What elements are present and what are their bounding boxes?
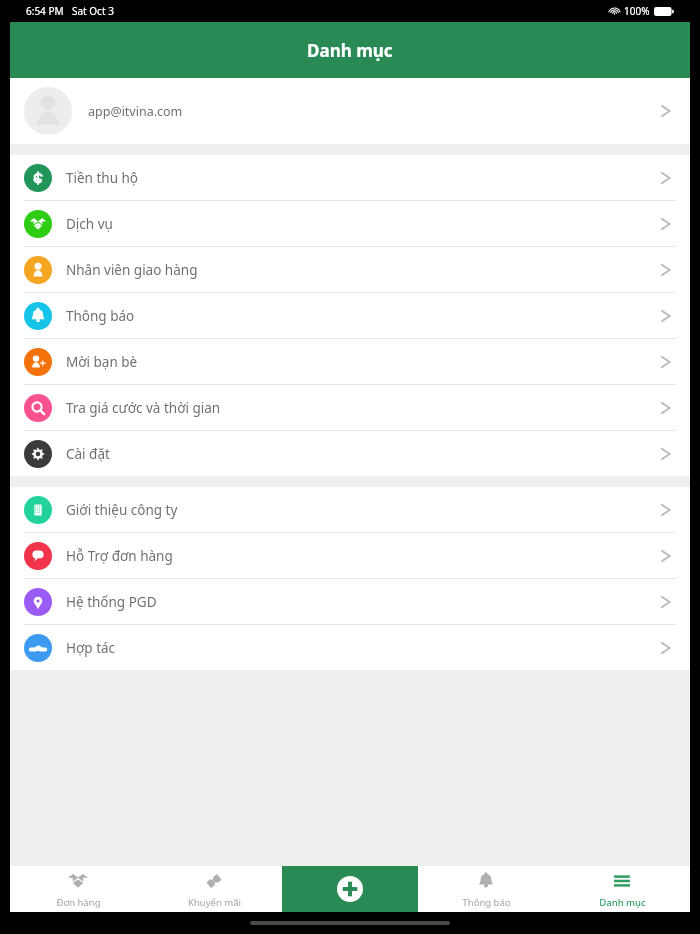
staticText: 100% <box>624 4 650 18</box>
staticText: Thông báo <box>462 896 511 909</box>
staticText: Hệ thống PGD <box>66 593 157 611</box>
button[interactable]: Giới thiệu công ty <box>10 487 690 533</box>
button[interactable]: app@itvina.com <box>10 78 690 144</box>
staticText: 6:54 PM <box>26 4 64 18</box>
staticText: Hỗ Trợ đơn hàng <box>66 547 173 565</box>
staticText: Thông báo <box>66 307 135 325</box>
button[interactable]: Cài đặt <box>10 431 690 476</box>
button[interactable]: Hệ thống PGD <box>10 579 690 625</box>
staticText: Danh mục <box>599 896 646 909</box>
button[interactable]: Đơn hàng <box>10 866 146 912</box>
button[interactable]: Hợp tác <box>10 625 690 670</box>
button[interactable]: Danh mục <box>554 866 690 912</box>
staticText: Đơn hàng <box>56 896 101 909</box>
staticText: Khuyến mãi <box>188 896 241 909</box>
staticText: Nhân viên giao hàng <box>66 261 198 279</box>
button[interactable]: Tạo đơn hàng mới <box>282 866 418 912</box>
staticText: Tiền thu hộ <box>66 169 139 187</box>
button[interactable]: Nhân viên giao hàng <box>10 247 690 293</box>
button[interactable]: Tra giá cước và thời gian <box>10 385 690 431</box>
staticText: app@itvina.com <box>88 103 183 120</box>
button[interactable]: Thông báo <box>10 293 690 339</box>
staticText: Giới thiệu công ty <box>66 501 178 519</box>
staticText: Dịch vụ <box>66 215 113 233</box>
staticText: Tra giá cước và thời gian <box>66 399 221 417</box>
button[interactable]: Hỗ Trợ đơn hàng <box>10 533 690 579</box>
staticText: Danh mục <box>307 39 393 62</box>
button[interactable]: Dịch vụ <box>10 201 690 247</box>
button[interactable]: Thông báo <box>418 866 554 912</box>
button[interactable]: Mời bạn bè <box>10 339 690 385</box>
button[interactable]: Tiền thu hộ <box>10 155 690 201</box>
staticText: Sat Oct 3 <box>72 4 114 18</box>
button[interactable]: Khuyến mãi <box>146 866 282 912</box>
staticText: Mời bạn bè <box>66 353 138 371</box>
staticText: Cài đặt <box>66 445 110 463</box>
staticText: Hợp tác <box>66 639 116 657</box>
